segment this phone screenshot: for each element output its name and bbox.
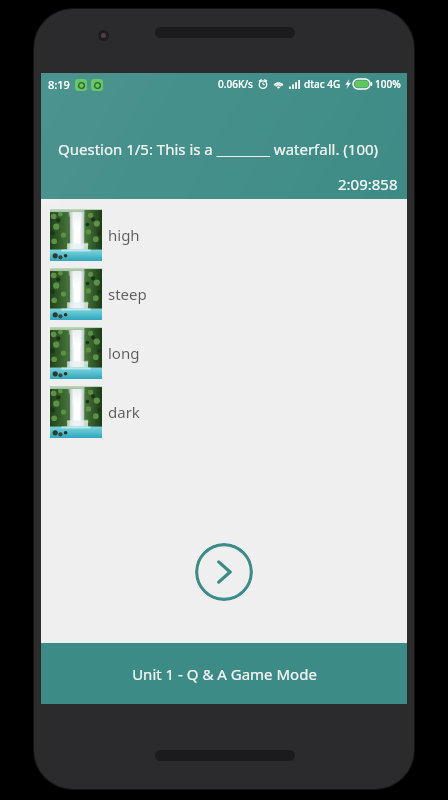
button[interactable]: long bbox=[41, 327, 407, 379]
button[interactable]: Next question bbox=[195, 543, 253, 601]
staticText: 100% bbox=[375, 77, 401, 91]
staticText: long bbox=[108, 343, 140, 363]
staticText: Unit 1 - Q & A Game Mode bbox=[132, 664, 317, 684]
staticText: 8:19 bbox=[48, 77, 70, 92]
staticText: 2:09:858 bbox=[338, 174, 398, 194]
button[interactable]: Unit 1 - Q & A Game Mode bbox=[41, 643, 407, 704]
staticText: steep bbox=[108, 284, 147, 304]
button[interactable]: high bbox=[41, 209, 407, 261]
staticText: dtac 4G bbox=[304, 77, 341, 91]
staticText: dark bbox=[108, 402, 140, 422]
button[interactable]: dark bbox=[41, 386, 407, 438]
staticText: high bbox=[108, 225, 140, 245]
staticText: Question 1/5: This is a ________ waterfa… bbox=[58, 139, 379, 159]
button[interactable]: steep bbox=[41, 268, 407, 320]
staticText: 0.06K/s bbox=[218, 77, 253, 91]
